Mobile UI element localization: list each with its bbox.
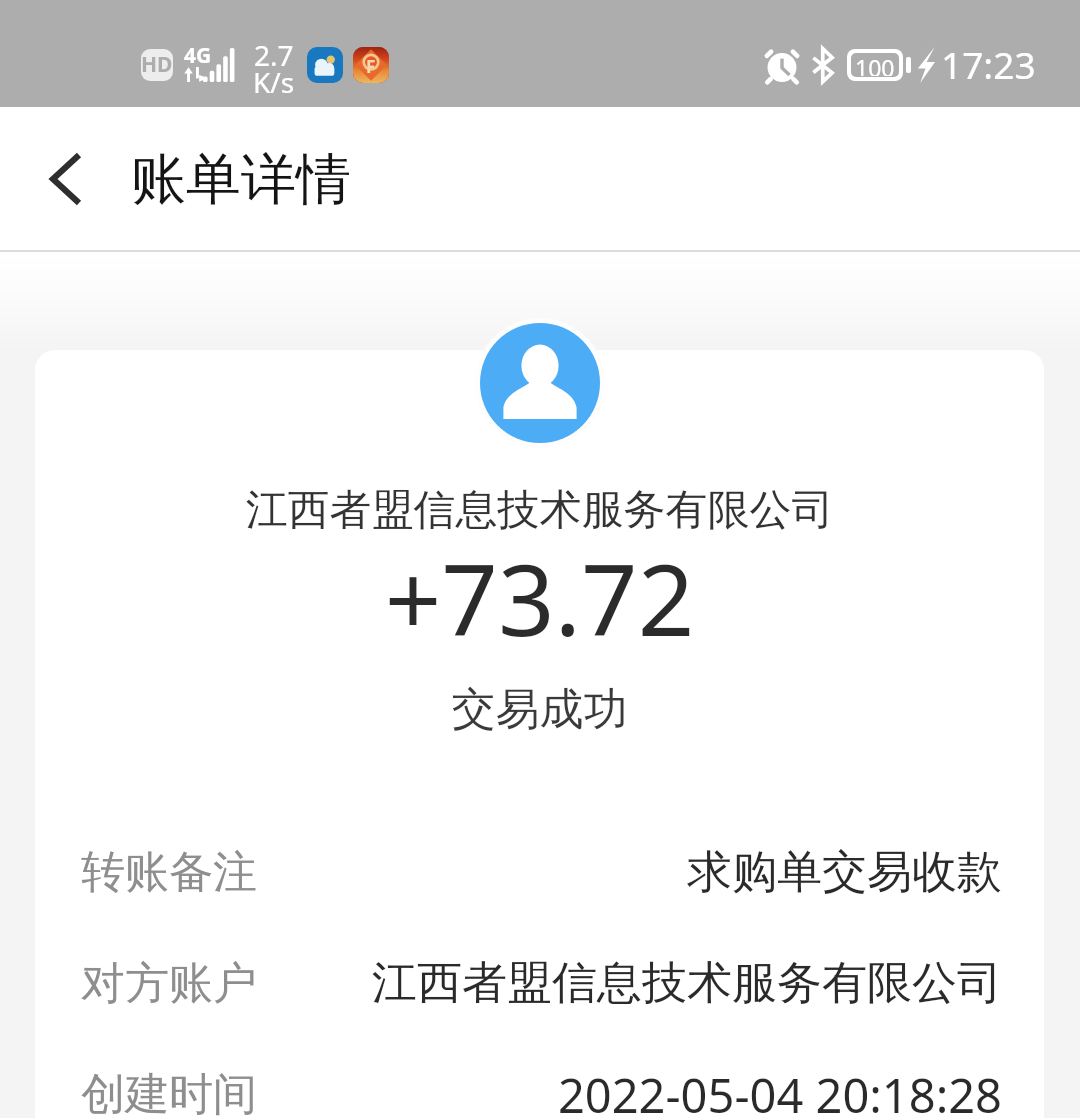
staticText: 交易成功 — [35, 682, 1044, 737]
button[interactable]: 创建时间 — [35, 1039, 1044, 1118]
button[interactable]: Back — [25, 139, 105, 219]
staticText: HD — [141, 50, 173, 79]
button[interactable]: Payer avatar — [480, 323, 600, 443]
staticText: 2.7 — [254, 36, 294, 74]
staticText: 4G — [184, 41, 212, 70]
staticText: 江西者盟信息技术服务有限公司 — [277, 955, 1002, 1012]
staticText: 17:23 — [941, 39, 1036, 89]
button[interactable]: 转账备注 — [35, 817, 1044, 928]
staticText: 求购单交易收款 — [277, 844, 1002, 901]
button[interactable]: 对方账户 — [35, 928, 1044, 1039]
staticText: 创建时间 — [81, 1067, 257, 1118]
staticText: 对方账户 — [81, 956, 257, 1011]
staticText: K/s — [253, 63, 295, 101]
staticText: 2022-05-04 20:18:28 — [277, 1063, 1002, 1118]
staticText: +73.72 — [35, 530, 1044, 665]
staticText: F — [366, 55, 376, 78]
staticText: 转账备注 — [81, 845, 257, 900]
staticText: 江西者盟信息技术服务有限公司 — [35, 484, 1044, 537]
staticText: 账单详情 — [131, 145, 351, 214]
staticText: 100 — [855, 53, 895, 76]
